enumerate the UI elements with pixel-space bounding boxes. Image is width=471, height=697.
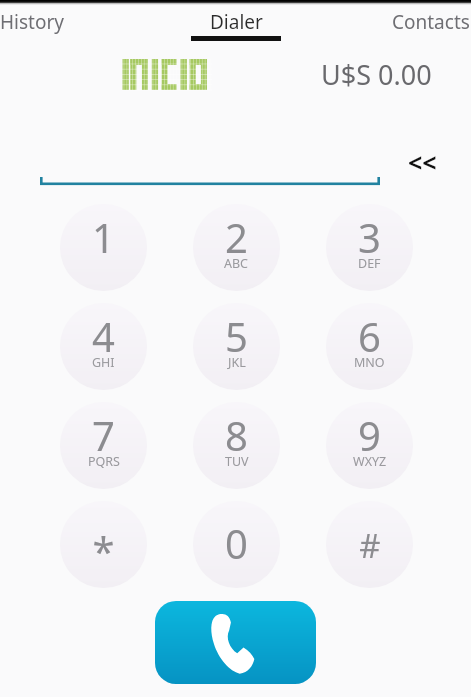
button[interactable]: Call: [155, 601, 316, 684]
staticText: GHI: [92, 354, 115, 371]
staticText: Contacts: [392, 9, 470, 35]
staticText: TUV: [225, 453, 249, 470]
staticText: DEF: [358, 255, 381, 272]
staticText: <<: [408, 145, 437, 179]
button[interactable]: 1: [60, 204, 147, 291]
button[interactable]: Dialer: [157, 4, 314, 46]
staticText: Dialer: [210, 9, 263, 35]
button[interactable]: *: [60, 501, 147, 588]
staticText: 6: [358, 309, 381, 363]
staticText: JKL: [228, 354, 246, 371]
staticText: 0: [225, 516, 248, 570]
button[interactable]: 4: [60, 303, 147, 390]
button[interactable]: 7: [60, 402, 147, 489]
staticText: 9: [358, 408, 381, 462]
button[interactable]: Backspace: [394, 134, 450, 190]
staticText: 5: [225, 309, 248, 363]
staticText: 2: [225, 210, 248, 264]
staticText: *: [92, 523, 115, 577]
button[interactable]: 0: [193, 501, 280, 588]
staticText: 7: [92, 408, 115, 462]
button[interactable]: 3: [326, 204, 413, 291]
staticText: 4: [92, 309, 115, 363]
button[interactable]: 5: [193, 303, 280, 390]
staticText: ABC: [224, 255, 249, 272]
staticText: 3: [358, 210, 381, 264]
button[interactable]: 8: [193, 402, 280, 489]
button[interactable]: Contacts: [314, 4, 471, 46]
button[interactable]: History: [0, 4, 157, 46]
staticText: 8: [225, 408, 248, 462]
button[interactable]: 9: [326, 402, 413, 489]
staticText: #: [359, 523, 381, 568]
staticText: PQRS: [88, 453, 120, 470]
staticText: U$S 0.00: [321, 56, 432, 93]
button[interactable]: 6: [326, 303, 413, 390]
button[interactable]: 2: [193, 204, 280, 291]
staticText: History: [0, 9, 64, 35]
staticText: WXYZ: [353, 453, 387, 470]
staticText: 1: [92, 210, 115, 264]
button[interactable]: #: [326, 501, 413, 588]
staticText: MNO: [354, 354, 385, 371]
